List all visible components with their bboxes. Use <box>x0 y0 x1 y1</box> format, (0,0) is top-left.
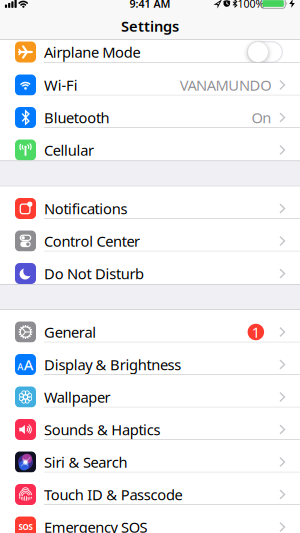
button[interactable]: Airplane Mode <box>0 30 300 63</box>
button[interactable]: Wallpaper <box>0 375 300 407</box>
staticText: Cellular <box>44 140 94 160</box>
button[interactable]: Notifications <box>0 186 300 219</box>
button[interactable]: Siri & Search <box>0 440 300 472</box>
staticText: Siri & Search <box>44 452 127 472</box>
staticText: A <box>17 360 23 373</box>
staticText: Notifications <box>44 199 127 218</box>
staticText: Touch ID & Passcode <box>44 485 183 504</box>
button[interactable]: Cellular <box>0 128 300 160</box>
staticText: VANAMUNDO <box>180 75 271 95</box>
staticText: Control Center <box>44 231 140 251</box>
staticText: Display & Brightness <box>44 355 181 374</box>
button[interactable]: Touch ID & Passcode <box>0 472 300 505</box>
staticText: 9:41 AM <box>129 0 170 11</box>
button[interactable]: Do Not Disturb <box>0 251 300 284</box>
button[interactable]: Bluetooth <box>0 95 300 128</box>
button[interactable]: Airplane Mode <box>247 41 300 63</box>
staticText: Bluetooth <box>44 108 110 127</box>
staticText: Emergency SOS <box>44 517 147 533</box>
staticText: Airplane Mode <box>44 42 140 62</box>
button[interactable]: A <box>0 342 300 375</box>
staticText: 1 <box>252 322 260 342</box>
button[interactable]: Control Center <box>0 219 300 251</box>
staticText: On <box>252 108 271 127</box>
button[interactable]: Wi-Fi <box>0 63 300 95</box>
button[interactable]: Sounds & Haptics <box>0 407 300 440</box>
staticText: Sounds & Haptics <box>44 420 160 439</box>
staticText: Wi-Fi <box>44 75 78 95</box>
staticText: General <box>44 322 96 342</box>
button[interactable]: SOS <box>0 505 300 533</box>
button[interactable]: General <box>0 310 300 342</box>
staticText: SOS <box>18 522 32 532</box>
staticText: Wallpaper <box>44 387 111 407</box>
staticText: A <box>24 355 34 374</box>
staticText: Do Not Disturb <box>44 264 144 283</box>
staticText: 100% <box>237 0 264 11</box>
staticText: Settings <box>121 16 179 36</box>
